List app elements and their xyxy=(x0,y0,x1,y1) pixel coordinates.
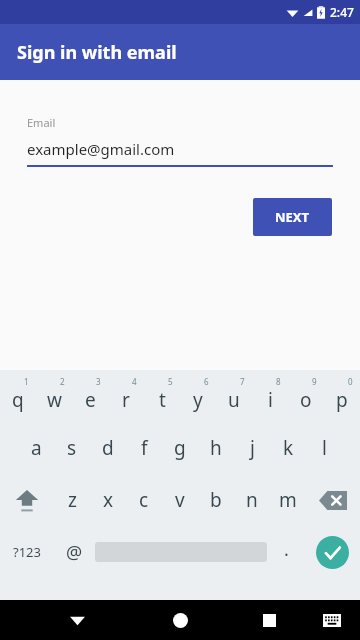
button[interactable]: v xyxy=(162,474,198,526)
button[interactable]: 2 xyxy=(36,370,72,422)
button[interactable]: m xyxy=(270,474,306,526)
button[interactable]: 1 xyxy=(0,370,36,422)
staticText: f xyxy=(141,435,148,461)
staticText: j xyxy=(250,435,255,461)
staticText: example@gmail.com xyxy=(27,139,175,159)
button[interactable]: h xyxy=(198,422,234,474)
staticText: n xyxy=(246,487,258,513)
button[interactable]: l xyxy=(306,422,342,474)
button[interactable]: . xyxy=(268,526,304,578)
button[interactable]: NEXT xyxy=(253,198,332,236)
button[interactable]: 6 xyxy=(180,370,216,422)
button[interactable]: c xyxy=(126,474,162,526)
button[interactable]: Enter xyxy=(304,526,360,578)
staticText: l xyxy=(322,435,327,461)
staticText: c xyxy=(139,487,149,513)
button[interactable]: Recents xyxy=(254,605,284,635)
staticText: 5 xyxy=(168,376,173,387)
button[interactable]: Backspace xyxy=(306,474,360,526)
staticText: 9 xyxy=(312,376,317,387)
staticText: t xyxy=(159,387,166,413)
staticText: p xyxy=(336,387,348,413)
staticText: r xyxy=(122,387,130,413)
button[interactable]: Shift xyxy=(0,474,54,526)
staticText: m xyxy=(279,487,297,513)
staticText: NEXT xyxy=(275,208,310,226)
staticText: 0 xyxy=(348,376,353,387)
button[interactable]: 0 xyxy=(324,370,360,422)
staticText: 1 xyxy=(24,376,29,387)
button[interactable]: s xyxy=(54,422,90,474)
staticText: y xyxy=(193,387,203,413)
staticText: x xyxy=(103,487,114,513)
staticText: e xyxy=(85,387,96,413)
staticText: 6 xyxy=(204,376,209,387)
button[interactable]: x xyxy=(90,474,126,526)
staticText: Sign in with email xyxy=(17,40,177,65)
button[interactable]: Keyboard xyxy=(318,606,346,634)
staticText: Email xyxy=(27,115,56,130)
button[interactable]: 7 xyxy=(216,370,252,422)
staticText: b xyxy=(210,487,222,513)
staticText: h xyxy=(210,435,222,461)
staticText: g xyxy=(174,435,186,461)
button[interactable]: d xyxy=(90,422,126,474)
staticText: w xyxy=(47,387,62,413)
staticText: 2 xyxy=(60,376,65,387)
staticText: 3 xyxy=(96,376,101,387)
staticText: @ xyxy=(66,540,83,565)
button[interactable]: 3 xyxy=(72,370,108,422)
staticText: 4 xyxy=(132,376,137,387)
staticText: o xyxy=(300,387,312,413)
staticText: i xyxy=(268,387,273,413)
button[interactable]: k xyxy=(270,422,306,474)
button[interactable]: g xyxy=(162,422,198,474)
staticText: z xyxy=(68,487,77,513)
button[interactable]: 9 xyxy=(288,370,324,422)
button[interactable]: Home xyxy=(165,605,195,635)
staticText: q xyxy=(12,387,24,413)
staticText: ?123 xyxy=(13,543,41,561)
button[interactable]: ?123 xyxy=(0,526,54,578)
staticText: 8 xyxy=(276,376,281,387)
button[interactable]: Space xyxy=(95,526,267,578)
button[interactable]: Back xyxy=(62,605,92,635)
button[interactable]: 4 xyxy=(108,370,144,422)
staticText: 2:47 xyxy=(330,4,354,20)
staticText: d xyxy=(102,435,114,461)
button[interactable]: a xyxy=(18,422,54,474)
staticText: 7 xyxy=(240,376,245,387)
staticText: . xyxy=(284,537,289,562)
button[interactable]: @ xyxy=(54,526,94,578)
staticText: u xyxy=(228,387,240,413)
button[interactable]: z xyxy=(54,474,90,526)
staticText: v xyxy=(175,487,185,513)
button[interactable]: 5 xyxy=(144,370,180,422)
staticText: a xyxy=(31,435,42,461)
button[interactable]: b xyxy=(198,474,234,526)
staticText: k xyxy=(283,435,294,461)
button[interactable]: 8 xyxy=(252,370,288,422)
staticText: s xyxy=(67,435,77,461)
button[interactable]: f xyxy=(126,422,162,474)
button[interactable]: j xyxy=(234,422,270,474)
button[interactable]: n xyxy=(234,474,270,526)
